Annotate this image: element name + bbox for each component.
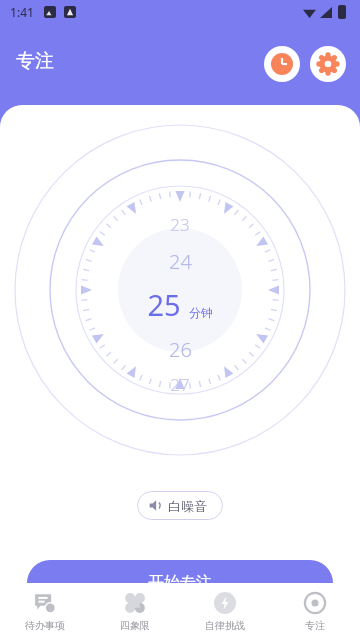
staticText: 分钟 (189, 305, 213, 320)
staticText: 专注 (305, 619, 325, 632)
staticText: 自律挑战 (205, 619, 245, 632)
staticText: 专注 (16, 49, 54, 73)
staticText: 开始专注 (148, 573, 212, 593)
staticText: 四象限 (120, 619, 150, 632)
button[interactable]: 待办事项 (0, 583, 90, 640)
staticText: 27 (170, 373, 190, 396)
button[interactable]: Settings (310, 46, 346, 82)
staticText: 26 (169, 336, 192, 363)
staticText: 1:41 (10, 4, 34, 20)
button[interactable]: 开始专注 (27, 560, 333, 606)
button[interactable]: 白噪音 (137, 491, 223, 520)
staticText: 23 (170, 213, 190, 236)
staticText: 白噪音 (168, 498, 207, 514)
button[interactable]: 自律挑战 (180, 583, 270, 640)
staticText: 24 (169, 248, 192, 275)
button[interactable]: Focus history (264, 46, 300, 82)
button[interactable]: 专注 (270, 583, 360, 640)
staticText: 待办事项 (25, 619, 65, 632)
button[interactable]: 四象限 (90, 583, 180, 640)
staticText: 25 (147, 285, 181, 324)
